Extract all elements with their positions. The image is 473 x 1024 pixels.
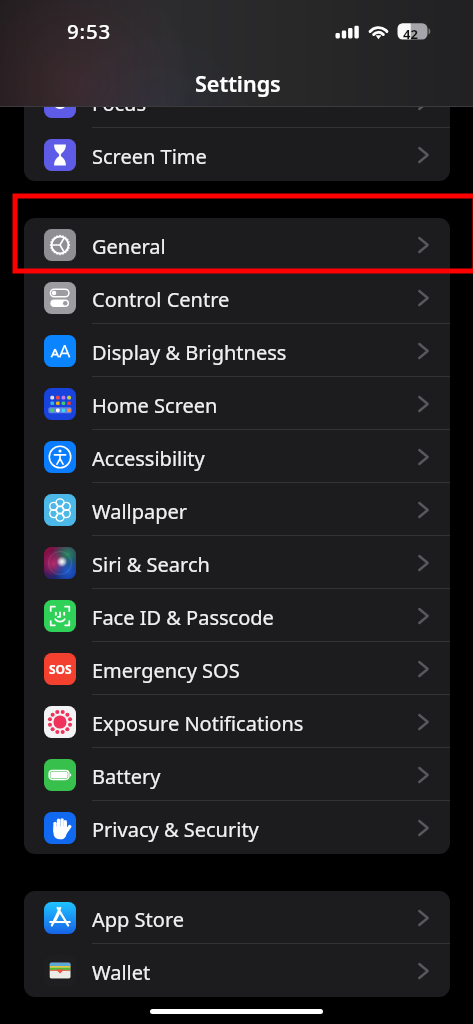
staticText: App Store (92, 906, 185, 933)
button[interactable]: General (24, 218, 450, 271)
staticText: Accessibility (92, 445, 205, 472)
staticText: Battery (92, 763, 161, 790)
button[interactable]: App Store (24, 891, 450, 944)
staticText: Emergency SOS (92, 657, 240, 684)
button[interactable]: Privacy & Security (24, 801, 450, 854)
button[interactable]: Screen Time (24, 128, 450, 181)
button[interactable]: Control Centre (24, 271, 450, 324)
staticText: Privacy & Security (92, 816, 259, 843)
button[interactable]: Accessibility (24, 430, 450, 483)
staticText: Settings (195, 69, 281, 98)
staticText: SOS (49, 661, 72, 677)
button[interactable]: Display & Brightness (24, 324, 450, 377)
staticText: Wallet (92, 959, 151, 986)
button[interactable]: Exposure Notifications (24, 695, 450, 748)
button[interactable]: Siri & Search (24, 536, 450, 589)
button[interactable]: Focus (24, 75, 450, 128)
button[interactable]: SOS (24, 642, 450, 695)
button[interactable]: Wallpaper (24, 483, 450, 536)
staticText: Display & Brightness (92, 339, 287, 366)
staticText: Home Screen (92, 392, 218, 419)
staticText: Control Centre (92, 286, 230, 313)
staticText: 42 (403, 25, 418, 43)
staticText: Focus (92, 90, 147, 117)
button[interactable]: Face ID & Passcode (24, 589, 450, 642)
button[interactable]: Wallet (24, 944, 450, 997)
button[interactable]: Battery (24, 748, 450, 801)
button[interactable]: Home Screen (24, 377, 450, 430)
staticText: Face ID & Passcode (92, 604, 274, 631)
staticText: Screen Time (92, 143, 207, 170)
staticText: General (92, 233, 166, 260)
staticText: Exposure Notifications (92, 710, 304, 737)
staticText: 9:53 (67, 17, 111, 45)
staticText: Siri & Search (92, 551, 210, 578)
staticText: Wallpaper (92, 498, 188, 525)
